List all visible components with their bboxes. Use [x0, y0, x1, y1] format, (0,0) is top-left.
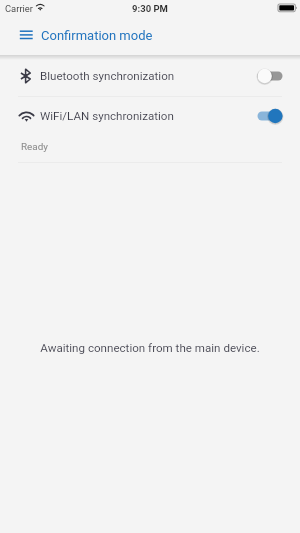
- other: Wi-Fi signal: [34, 2, 48, 14]
- other: Battery full: [278, 4, 298, 13]
- button[interactable]: Bluetooth: [0, 56, 300, 96]
- staticText: 9:30 PM: [0, 3, 300, 14]
- button[interactable]: WiFi: [0, 96, 300, 136]
- staticText: Bluetooth synchronization: [40, 69, 175, 83]
- button[interactable]: WiFi/LAN synchronization, on: [251, 103, 289, 129]
- staticText: WiFi/LAN synchronization: [40, 109, 174, 123]
- staticText: Ready: [21, 141, 48, 153]
- other: Bluetooth: [14, 56, 38, 96]
- staticText: Awaiting connection from the main device…: [0, 341, 300, 355]
- button[interactable]: Bluetooth synchronization, off: [251, 63, 289, 89]
- staticText: Confirmation mode: [41, 28, 153, 43]
- button[interactable]: Open navigation menu: [14, 24, 37, 46]
- other: WiFi: [14, 96, 38, 136]
- staticText: Carrier: [5, 3, 34, 14]
